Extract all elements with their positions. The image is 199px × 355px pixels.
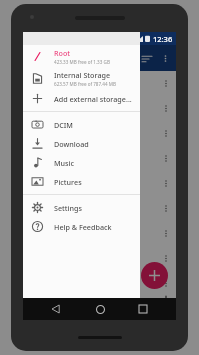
button[interactable]: Pictures	[23, 172, 140, 191]
staticText: 12:36	[153, 34, 173, 44]
button[interactable]: More options	[156, 49, 175, 68]
button[interactable]: Item options	[23, 221, 176, 246]
button[interactable]: Item options	[157, 296, 174, 298]
button[interactable]: Item options	[157, 250, 174, 267]
button[interactable]: Item options	[23, 121, 176, 146]
staticText: Settings	[54, 203, 82, 213]
button[interactable]: Item options	[23, 146, 176, 171]
button[interactable]: Back	[46, 299, 66, 319]
button[interactable]: Item options	[157, 75, 174, 92]
button[interactable]: Item options	[157, 100, 174, 117]
button[interactable]: Item options	[157, 175, 174, 192]
button[interactable]: Item options	[157, 125, 174, 142]
staticText: Add external storage...	[54, 94, 132, 104]
button[interactable]: Item options	[23, 296, 176, 298]
button[interactable]: Item options	[157, 200, 174, 217]
staticText: Download	[54, 139, 89, 149]
staticText: 423.33 MB free of 1.33 GB	[54, 59, 110, 65]
button[interactable]: Item options	[23, 171, 176, 196]
button[interactable]: Add external storage...	[23, 89, 140, 108]
button[interactable]: Item options	[23, 271, 176, 296]
button[interactable]: Home	[90, 299, 110, 319]
button[interactable]: Add	[141, 262, 168, 289]
button[interactable]: Item options	[23, 246, 176, 271]
staticText: DCIM	[54, 120, 73, 130]
button[interactable]: Item options	[23, 196, 176, 221]
button[interactable]: Item options	[157, 275, 174, 292]
button[interactable]: Help & Feedback	[23, 217, 140, 236]
button[interactable]: Sort	[137, 49, 156, 68]
button[interactable]: Settings	[23, 198, 140, 217]
staticText: Help & Feedback	[54, 222, 112, 232]
button[interactable]: Item options	[157, 225, 174, 242]
staticText: Root	[54, 48, 71, 58]
button[interactable]: Music	[23, 153, 140, 172]
staticText: 623.57 MB free of 787.44 MB	[54, 81, 116, 87]
staticText: Music	[54, 158, 75, 168]
button[interactable]: Item options	[157, 150, 174, 167]
button[interactable]: Item options	[23, 96, 176, 121]
button[interactable]: Root	[23, 45, 140, 67]
staticText: Pictures	[54, 177, 82, 187]
button[interactable]: Internal Storage	[23, 67, 140, 89]
staticText: Internal Storage	[54, 70, 111, 80]
button[interactable]: Download	[23, 134, 140, 153]
button[interactable]: DCIM	[23, 115, 140, 134]
button[interactable]: Recent apps	[133, 299, 153, 319]
button[interactable]: Item options	[23, 71, 176, 96]
